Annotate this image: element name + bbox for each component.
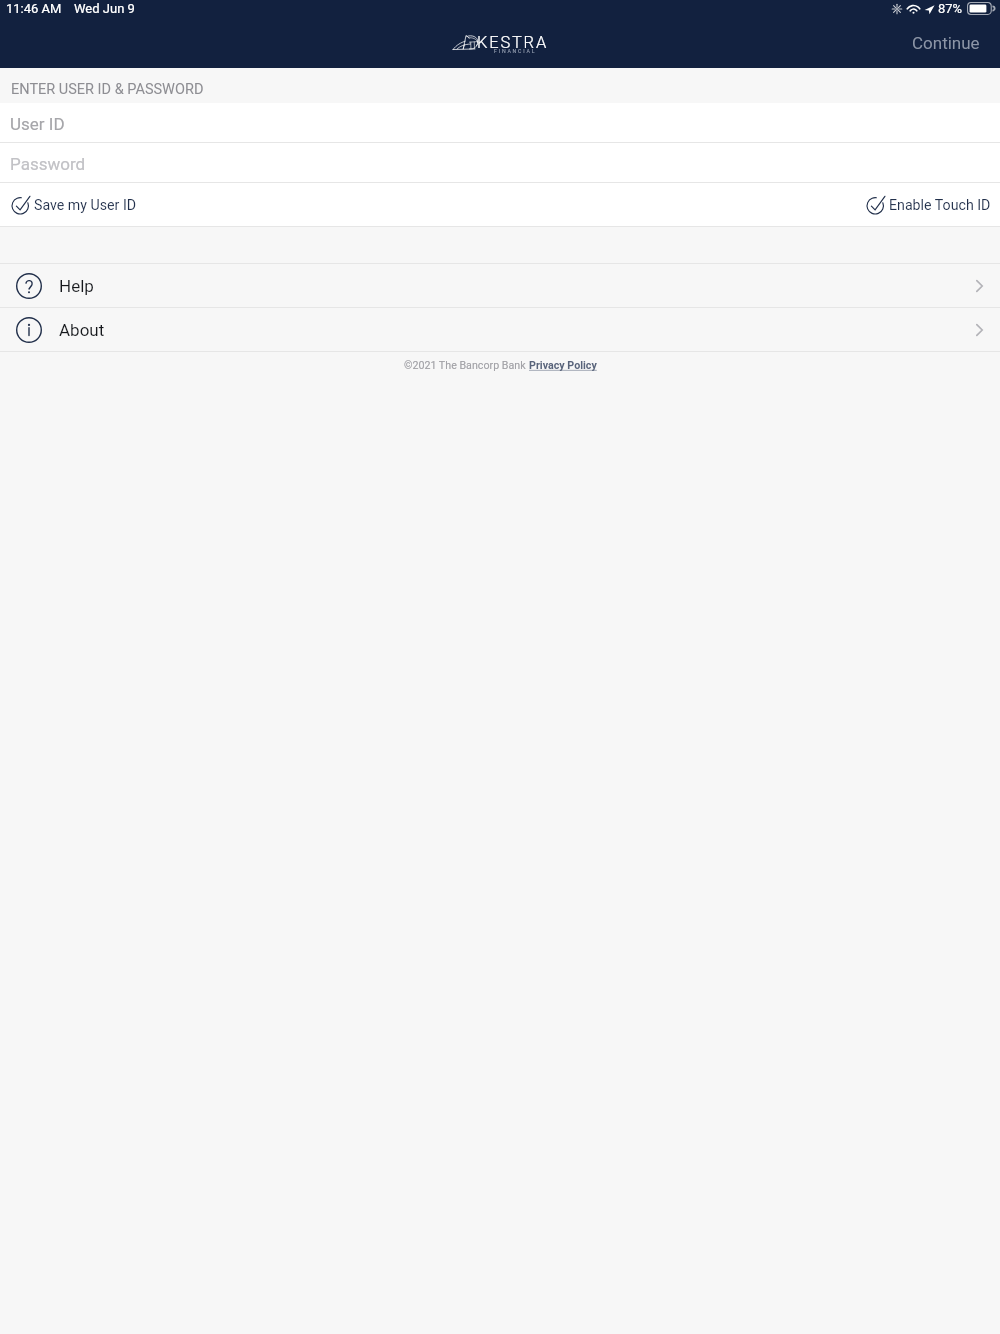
button[interactable]: About: [0, 308, 1000, 351]
staticText: About: [59, 320, 105, 340]
staticText: Privacy Policy: [529, 359, 597, 372]
button[interactable]: Password: [0, 143, 1000, 182]
staticText: 11:46 AM: [6, 1, 62, 16]
staticText: 87%: [938, 1, 963, 16]
button[interactable]: Continue: [892, 25, 1000, 65]
staticText: Password: [10, 154, 86, 174]
button[interactable]: User ID: [0, 103, 1000, 142]
staticText: User ID: [10, 114, 65, 134]
staticText: ENTER USER ID & PASSWORD: [11, 81, 204, 98]
staticText: ©2021 The Bancorp Bank: [404, 359, 529, 372]
staticText: Continue: [912, 33, 980, 53]
staticText: Enable Touch ID: [889, 197, 991, 214]
button[interactable]: Enable Touch ID: [859, 196, 1000, 214]
staticText: FINANCIAL: [494, 48, 537, 54]
button[interactable]: Help: [0, 264, 1000, 307]
button[interactable]: Privacy Policy: [529, 359, 597, 372]
staticText: KESTRA: [477, 33, 549, 52]
staticText: Save my User ID: [34, 197, 137, 214]
staticText: Help: [59, 276, 94, 296]
button[interactable]: Save my User ID: [0, 196, 145, 214]
staticText: Wed Jun 9: [74, 1, 135, 16]
